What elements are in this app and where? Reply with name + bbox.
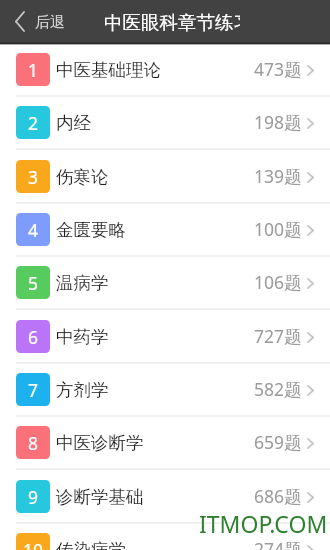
button[interactable]: 7	[0, 364, 330, 417]
staticText: 100题	[254, 217, 302, 241]
staticText: 10	[23, 538, 44, 550]
staticText: 473题	[254, 57, 302, 81]
staticText: 中医眼科章节练习	[104, 11, 240, 34]
staticText: 中医基础理论	[56, 59, 161, 81]
staticText: 内经	[56, 112, 91, 134]
staticText: 582题	[254, 377, 302, 401]
staticText: 伤寒论	[56, 166, 109, 188]
staticText: ITMOP.COM	[199, 508, 328, 539]
button[interactable]: 2	[0, 97, 330, 150]
staticText: 106题	[254, 270, 302, 294]
button[interactable]: 9	[0, 471, 330, 524]
button[interactable]: 8	[0, 417, 330, 470]
staticText: 温病学	[56, 272, 109, 294]
staticText: 7	[28, 378, 39, 402]
staticText: 金匮要略	[56, 219, 126, 241]
button[interactable]: 4	[0, 204, 330, 257]
staticText: 6	[28, 325, 39, 349]
staticText: 中医诊断学	[56, 432, 144, 454]
staticText: 727题	[254, 324, 302, 348]
staticText: 1	[28, 58, 39, 82]
staticText: 4	[28, 218, 39, 242]
button[interactable]: 6	[0, 311, 330, 364]
staticText: 8	[28, 431, 39, 455]
button[interactable]: 5	[0, 257, 330, 310]
staticText: 2	[28, 111, 39, 135]
staticText: 274题	[254, 537, 302, 550]
button[interactable]: 1	[0, 44, 330, 97]
staticText: 中药学	[56, 326, 109, 348]
staticText: 后退	[35, 13, 65, 32]
staticText: 659题	[254, 430, 302, 454]
button[interactable]: 10	[0, 524, 330, 550]
button[interactable]: 3	[0, 151, 330, 204]
button[interactable]: Back	[0, 0, 75, 44]
staticText: 传染病学	[56, 539, 126, 550]
staticText: 方剂学	[56, 379, 109, 401]
staticText: 5	[28, 271, 39, 295]
staticText: 139题	[254, 164, 302, 188]
staticText: 9	[28, 485, 39, 509]
staticText: 3	[28, 165, 39, 189]
staticText: 686题	[254, 484, 302, 508]
staticText: 198题	[254, 110, 302, 134]
staticText: 诊断学基础	[56, 486, 144, 508]
